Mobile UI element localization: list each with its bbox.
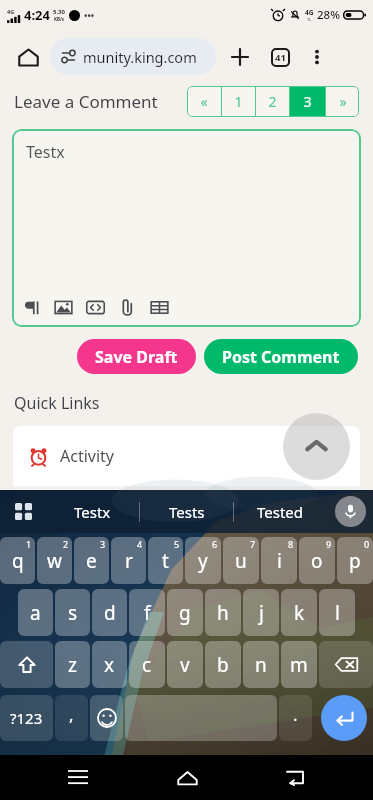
- staticText: 2: [268, 92, 277, 111]
- staticText: Save Draft: [95, 346, 178, 368]
- staticText: 28%: [317, 7, 340, 23]
- button[interactable]: Scroll to top: [283, 413, 350, 480]
- staticText: f: [144, 600, 151, 626]
- staticText: i: [277, 548, 282, 574]
- button[interactable]: h: [205, 589, 241, 636]
- button[interactable]: Home: [157, 755, 217, 800]
- button[interactable]: y: [185, 537, 221, 584]
- staticText: 1: [26, 538, 32, 550]
- button[interactable]: Recent apps: [48, 755, 108, 800]
- button[interactable]: i: [261, 537, 297, 584]
- button[interactable]: t: [148, 537, 183, 584]
- button[interactable]: image: [54, 298, 73, 317]
- staticText: ,: [69, 703, 74, 726]
- button[interactable]: munity.king.com: [50, 38, 216, 75]
- staticText: v: [180, 652, 190, 678]
- button[interactable]: »: [326, 86, 359, 117]
- staticText: Quick Links: [14, 392, 100, 414]
- button[interactable]: b: [205, 641, 241, 688]
- staticText: l: [335, 600, 340, 626]
- button[interactable]: o: [299, 537, 335, 584]
- staticText: r: [125, 548, 133, 574]
- staticText: p: [349, 548, 361, 574]
- button[interactable]: Save Draft: [77, 339, 196, 374]
- staticText: 0: [364, 538, 370, 550]
- staticText: Testx: [74, 502, 111, 522]
- staticText: 4: [137, 538, 143, 550]
- button[interactable]: e: [74, 537, 109, 584]
- staticText: 5.30: [53, 8, 65, 16]
- button[interactable]: d: [92, 589, 127, 636]
- button[interactable]: clip: [118, 298, 137, 317]
- button[interactable]: r: [111, 537, 146, 584]
- button[interactable]: q: [0, 537, 35, 584]
- staticText: a: [30, 600, 41, 626]
- button[interactable]: Keyboard menu: [0, 490, 46, 533]
- button[interactable]: n: [243, 641, 279, 688]
- staticText: 9: [326, 538, 332, 550]
- staticText: «: [200, 92, 208, 111]
- staticText: 41: [275, 51, 286, 64]
- button[interactable]: w: [37, 537, 72, 584]
- staticText: o: [311, 548, 323, 574]
- button[interactable]: table: [150, 298, 169, 317]
- staticText: »: [339, 92, 347, 111]
- staticText: 4G: [305, 8, 314, 17]
- staticText: Testx: [26, 141, 65, 163]
- button[interactable]: Backspace: [319, 641, 373, 688]
- button[interactable]: g: [167, 589, 203, 636]
- staticText: d: [104, 600, 116, 626]
- button[interactable]: Enter: [321, 695, 367, 741]
- button[interactable]: Testx: [46, 490, 139, 533]
- staticText: g: [179, 600, 191, 626]
- button[interactable]: .: [279, 695, 312, 741]
- staticText: y: [198, 548, 208, 574]
- button[interactable]: Tabs: [262, 39, 298, 75]
- button[interactable]: Home: [10, 39, 46, 75]
- staticText: 2: [63, 538, 69, 550]
- button[interactable]: Back: [265, 755, 325, 800]
- staticText: TL: [307, 17, 312, 22]
- button[interactable]: z: [55, 641, 90, 688]
- button[interactable]: v: [167, 641, 203, 688]
- staticText: 6: [212, 538, 218, 550]
- staticText: 1: [234, 92, 243, 111]
- button[interactable]: Post Comment: [204, 339, 358, 374]
- button[interactable]: x: [92, 641, 127, 688]
- staticText: q: [12, 548, 24, 574]
- button[interactable]: Voice input: [335, 496, 366, 527]
- staticText: u: [235, 548, 247, 574]
- button[interactable]: u: [223, 537, 259, 584]
- button[interactable]: a: [18, 589, 53, 636]
- staticText: 4G: [7, 8, 15, 15]
- button[interactable]: j: [243, 589, 279, 636]
- staticText: Tests: [169, 502, 205, 522]
- button[interactable]: Emoji: [90, 695, 123, 741]
- button[interactable]: Testx: [12, 129, 361, 327]
- button[interactable]: k: [281, 589, 317, 636]
- button[interactable]: Activity: [13, 426, 360, 486]
- button[interactable]: «: [187, 86, 221, 117]
- button[interactable]: ?123: [0, 695, 53, 741]
- button[interactable]: m: [281, 641, 317, 688]
- button[interactable]: 1: [222, 86, 255, 117]
- button[interactable]: code: [86, 298, 105, 317]
- button[interactable]: f: [129, 589, 165, 636]
- button[interactable]: 2: [256, 86, 289, 117]
- button[interactable]: Space: [125, 695, 277, 741]
- button[interactable]: Tests: [140, 490, 233, 533]
- button[interactable]: para: [22, 298, 41, 317]
- button[interactable]: l: [319, 589, 355, 636]
- button[interactable]: 3: [290, 86, 325, 117]
- button[interactable]: Tested: [234, 490, 327, 533]
- button[interactable]: Shift: [0, 641, 53, 688]
- button[interactable]: ,: [55, 695, 88, 741]
- button[interactable]: c: [129, 641, 165, 688]
- button[interactable]: More options: [300, 40, 334, 74]
- button[interactable]: p: [337, 537, 373, 584]
- staticText: t: [162, 548, 169, 574]
- staticText: x: [104, 652, 115, 678]
- button[interactable]: New tab: [222, 39, 258, 75]
- button[interactable]: s: [55, 589, 90, 636]
- staticText: 5: [174, 538, 180, 550]
